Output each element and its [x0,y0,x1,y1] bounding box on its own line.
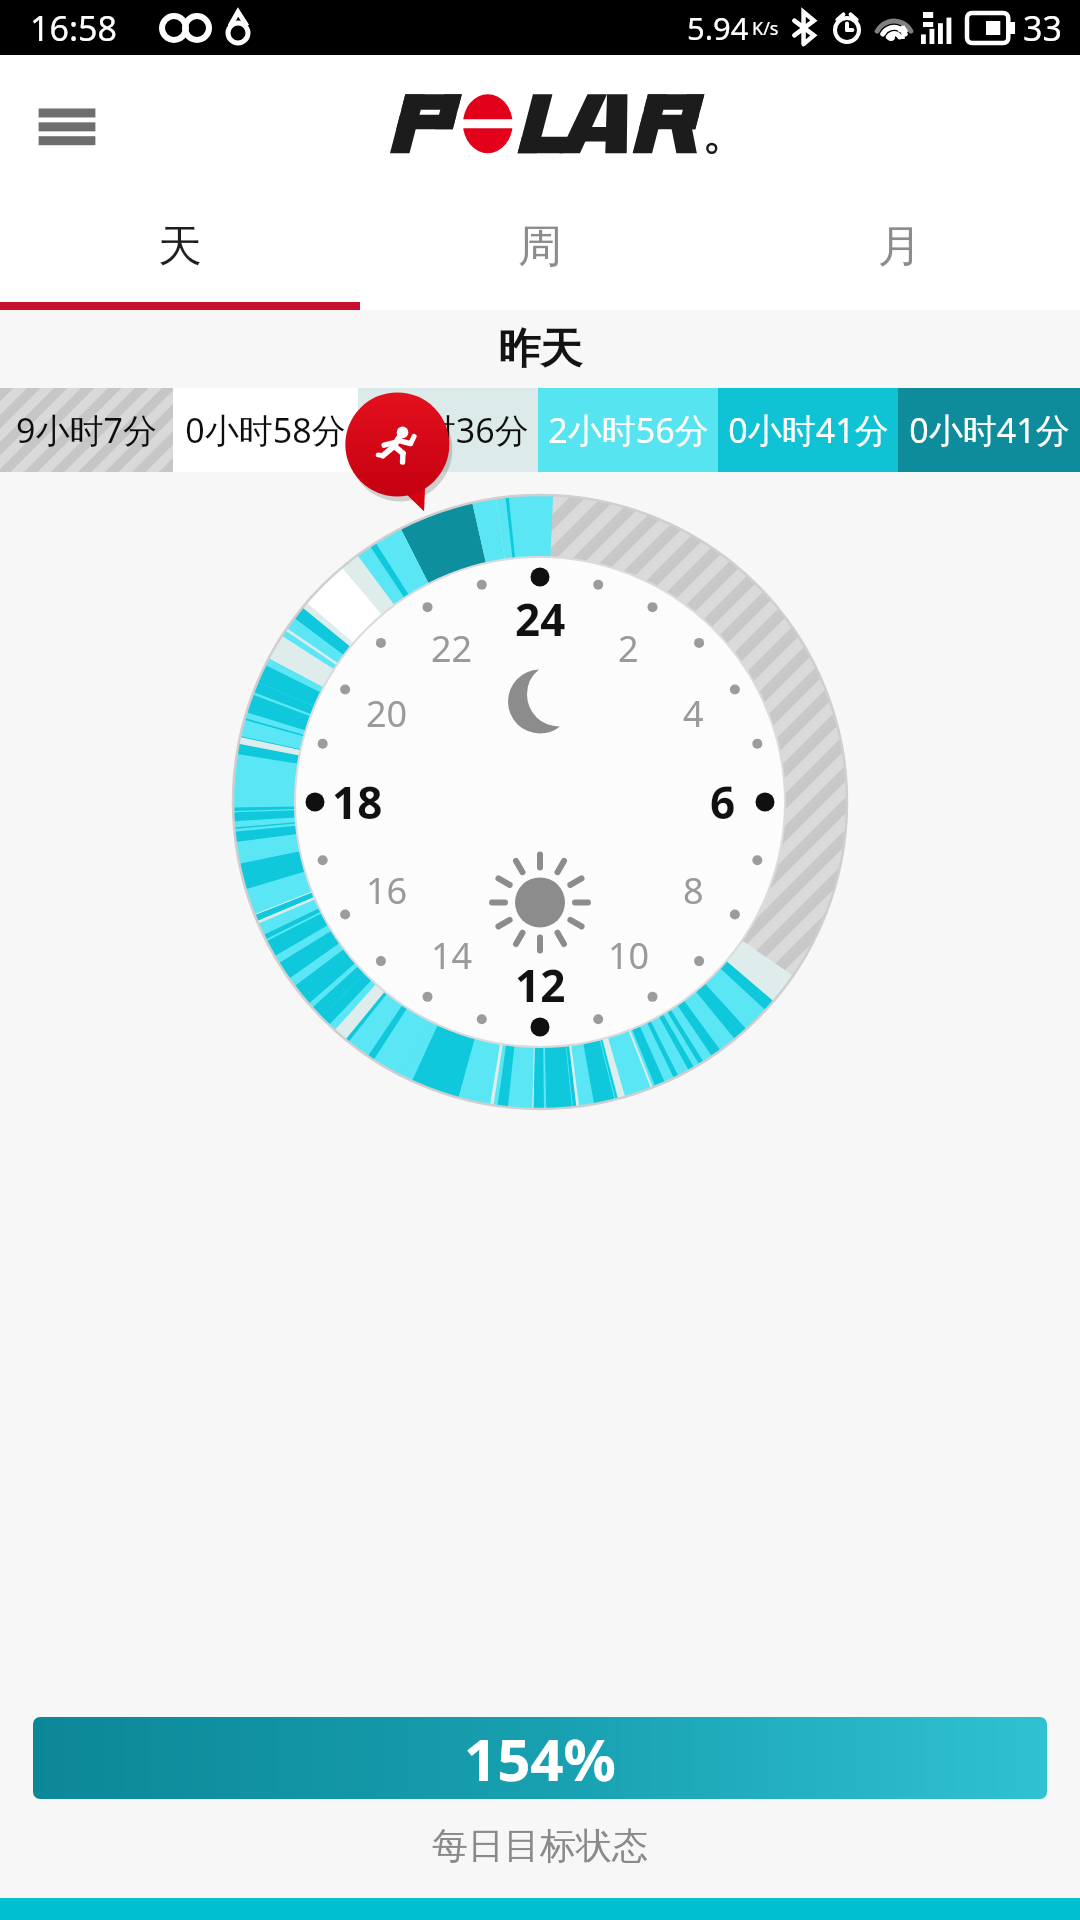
staticText: 0小时41分 [909,407,1070,453]
staticText: 10 [608,931,650,980]
button[interactable]: 周 [360,190,720,302]
button[interactable]: 0小时41分 [718,388,898,472]
staticText: 6 [710,772,736,832]
staticText: 14 [431,931,473,980]
staticText: 33 [1023,5,1062,51]
staticText: 每日目标状态 [432,1823,648,1868]
button[interactable]: 天 [0,190,360,302]
button[interactable]: 2小时56分 [538,388,718,472]
staticText: 0小时41分 [728,407,889,453]
staticText: 18 [332,772,383,832]
staticText: 20 [366,689,408,738]
staticText: 2小时56分 [548,407,709,453]
staticText: 16:58 [30,5,117,51]
staticText: 9小时7分 [16,407,157,453]
button[interactable]: 0小时41分 [898,388,1080,472]
staticText: 12 [515,955,566,1015]
staticText: 9小时36分 [368,407,529,453]
staticText: 154% [464,1719,616,1798]
button[interactable]: 9小时7分 [0,388,173,472]
button[interactable]: 0小时58分 [173,388,358,472]
staticText: 8 [683,866,704,915]
button[interactable]: 月 [720,190,1080,302]
staticText: 16 [366,866,408,915]
staticText: 昨天 [498,323,582,376]
staticText: 周 [518,219,562,274]
staticText: 5.94 [687,7,749,49]
staticText: 24 [515,589,566,649]
staticText: 0小时58分 [185,407,346,453]
staticText: 22 [431,624,473,673]
button[interactable]: 9小时36分 [358,388,538,472]
staticText: K/s [752,16,779,41]
staticText: 4 [683,689,704,738]
staticText: 天 [158,219,202,274]
staticText: 2 [618,624,639,673]
button[interactable]: Menu [34,90,100,156]
button[interactable]: 154% [33,1717,1047,1799]
staticText: 月 [878,219,922,274]
